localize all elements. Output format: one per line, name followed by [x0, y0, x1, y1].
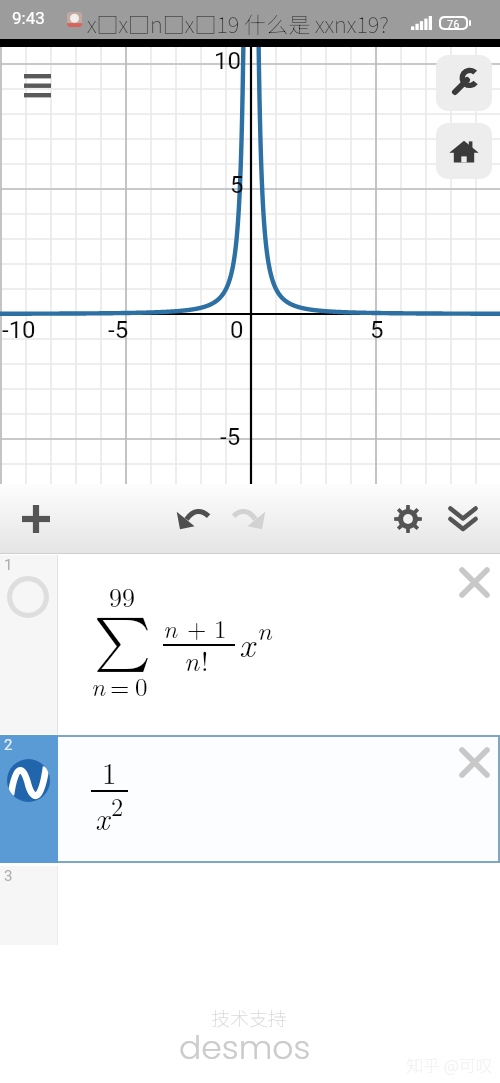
- button[interactable]: Delete expression: [458, 746, 490, 778]
- staticText: n: [163, 610, 178, 645]
- staticText: 76: [447, 18, 460, 28]
- staticText: n: [257, 611, 272, 648]
- staticText: 0: [135, 668, 148, 703]
- staticText: x□x□n□x□19 什么是 xxnx19?: [87, 7, 389, 39]
- staticText: -10: [2, 316, 36, 344]
- staticText: 9:43: [12, 8, 45, 28]
- staticText: 2: [4, 736, 13, 754]
- button[interactable]: Redo: [226, 484, 270, 554]
- staticText: 技术支持: [211, 1004, 288, 1032]
- staticText: 知乎 @可叹: [406, 1052, 493, 1077]
- staticText: !: [201, 641, 209, 679]
- staticText: ∑: [94, 614, 152, 668]
- button[interactable]: 3: [0, 866, 500, 945]
- staticText: 10: [214, 47, 241, 75]
- button[interactable]: Menu: [12, 60, 62, 110]
- button[interactable]: Graph settings: [386, 484, 430, 554]
- button[interactable]: Home: [436, 123, 492, 179]
- staticText: 1: [214, 610, 227, 645]
- button[interactable]: Collapse list: [441, 484, 485, 554]
- staticText: n: [184, 641, 200, 679]
- staticText: 3: [4, 867, 13, 885]
- staticText: 5: [370, 316, 384, 344]
- staticText: -5: [220, 423, 241, 451]
- button[interactable]: Add expression: [14, 484, 58, 554]
- button[interactable]: Undo: [171, 484, 215, 554]
- staticText: +: [187, 610, 207, 645]
- staticText: 1: [4, 556, 13, 574]
- staticText: desmos: [179, 1024, 311, 1070]
- button[interactable]: 1: [0, 555, 500, 734]
- staticText: 0: [230, 316, 244, 344]
- staticText: x: [239, 619, 255, 667]
- staticText: 99: [109, 578, 136, 615]
- staticText: 5: [230, 171, 244, 199]
- staticText: =: [110, 668, 130, 703]
- button[interactable]: 2: [0, 735, 500, 863]
- staticText: -5: [108, 316, 129, 344]
- staticText: n: [91, 668, 106, 703]
- staticText: x: [95, 795, 110, 839]
- button[interactable]: Graph tools: [436, 55, 492, 111]
- button[interactable]: Delete expression: [458, 566, 490, 598]
- staticText: 1: [102, 751, 117, 792]
- staticText: 2: [111, 788, 124, 823]
